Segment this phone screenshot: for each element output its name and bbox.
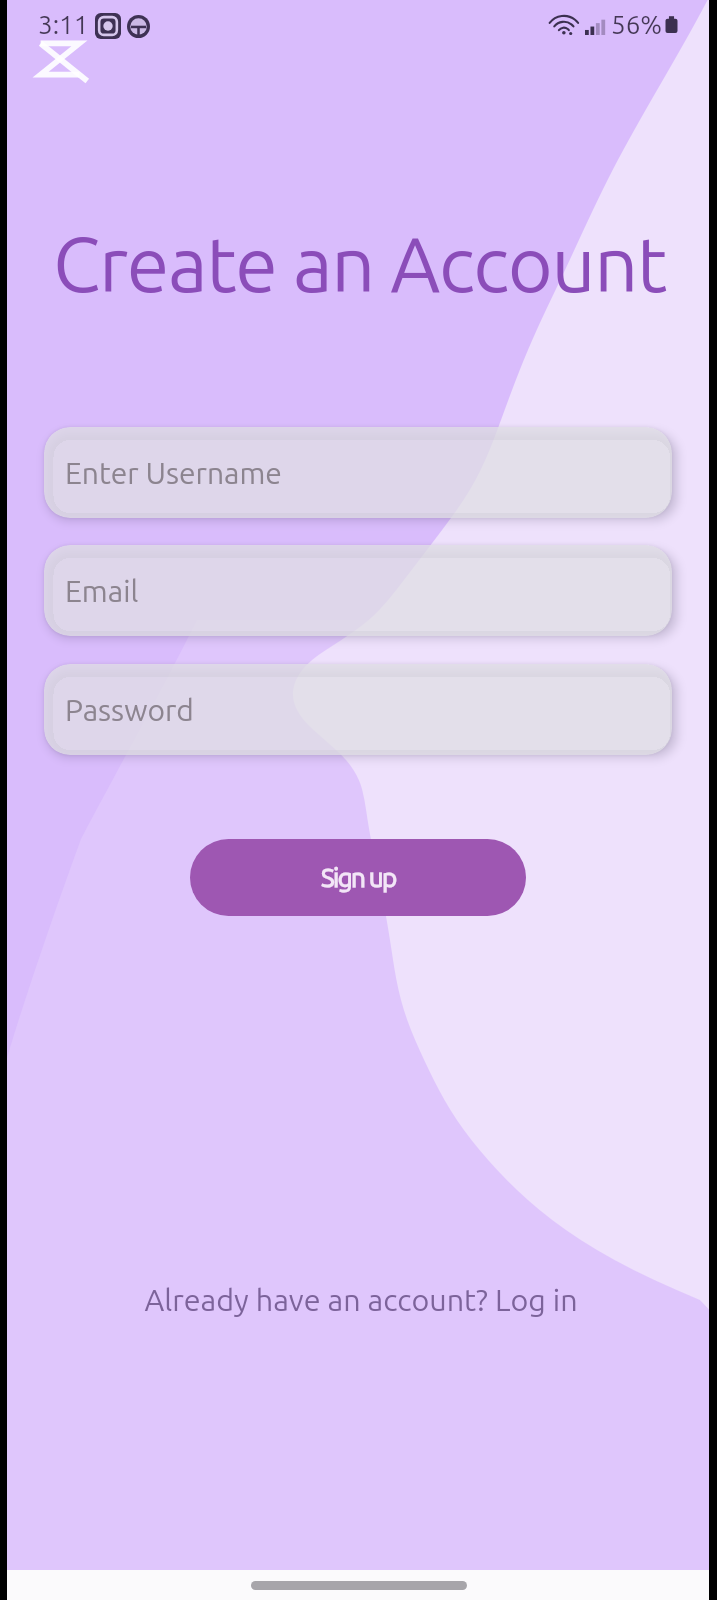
staticText: 3:11 [38, 10, 89, 39]
other: Mobile signal [585, 17, 606, 35]
button[interactable]: Already have an account? Log in [111, 1276, 611, 1324]
button[interactable]: Enter Username [44, 427, 672, 518]
staticText: 56% [611, 10, 663, 39]
button[interactable]: Sign up [190, 839, 526, 916]
other: Driving mode [127, 15, 150, 38]
staticText: Email [65, 574, 139, 608]
staticText: Password [65, 693, 194, 727]
staticText: Create an Account [53, 220, 666, 306]
button[interactable]: Email [44, 545, 672, 636]
button[interactable]: Password [44, 664, 672, 755]
other: Wi-Fi [549, 14, 580, 35]
staticText: Already have an account? Log in [144, 1283, 578, 1317]
other: Screen recorder [95, 13, 121, 39]
staticText: Sign up [321, 863, 396, 892]
other: Battery 56 percent [664, 13, 679, 36]
staticText: Enter Username [65, 456, 282, 490]
